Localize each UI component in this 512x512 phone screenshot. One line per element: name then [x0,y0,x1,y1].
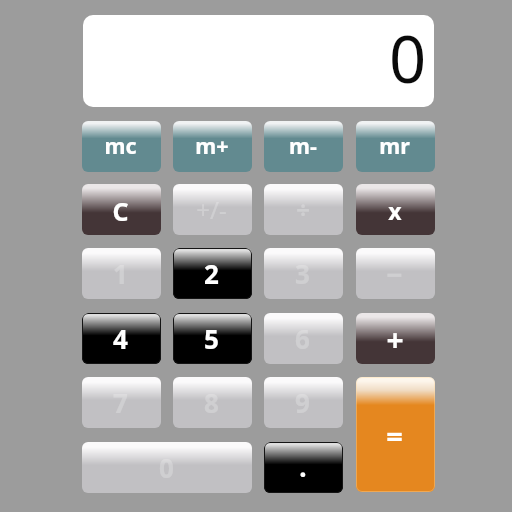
button[interactable]: 0 [82,442,252,493]
button[interactable]: 8 [173,377,252,428]
staticText: ÷ [296,193,310,226]
staticText: m- [289,131,317,160]
staticText: +/- [196,193,227,226]
staticText: C [112,194,129,228]
button[interactable]: 4 [82,313,161,364]
staticText: 4 [113,321,128,356]
staticText: 5 [204,321,219,356]
button[interactable]: = [356,377,435,492]
button[interactable]: . [264,442,343,493]
staticText: m+ [195,131,229,160]
staticText: + [386,319,404,360]
button[interactable]: 2 [173,248,252,299]
button[interactable]: 5 [173,313,252,364]
button[interactable]: 0 [83,15,434,107]
button[interactable]: +/- [173,184,252,235]
staticText: mc [104,131,137,160]
staticText: 9 [295,385,310,420]
button[interactable]: mc [82,121,161,172]
button[interactable]: − [356,248,435,299]
button[interactable]: 1 [82,248,161,299]
staticText: 2 [204,256,219,291]
staticText: 0 [389,15,427,103]
button[interactable]: 9 [264,377,343,428]
staticText: 6 [295,321,310,356]
staticText: 8 [204,385,219,420]
staticText: x [388,195,402,226]
button[interactable]: 6 [264,313,343,364]
staticText: = [386,416,403,455]
button[interactable]: + [356,313,435,364]
staticText: 7 [113,385,128,420]
staticText: 1 [113,256,128,291]
button[interactable]: m- [264,121,343,172]
button[interactable]: mr [356,121,435,172]
button[interactable]: 7 [82,377,161,428]
staticText: − [386,255,403,293]
button[interactable]: m+ [173,121,252,172]
button[interactable]: x [356,184,435,235]
staticText: mr [379,131,410,160]
staticText: 3 [295,256,310,291]
button[interactable]: C [82,184,161,235]
staticText: . [299,449,307,484]
button[interactable]: 3 [264,248,343,299]
button[interactable]: ÷ [264,184,343,235]
staticText: 0 [159,450,174,485]
